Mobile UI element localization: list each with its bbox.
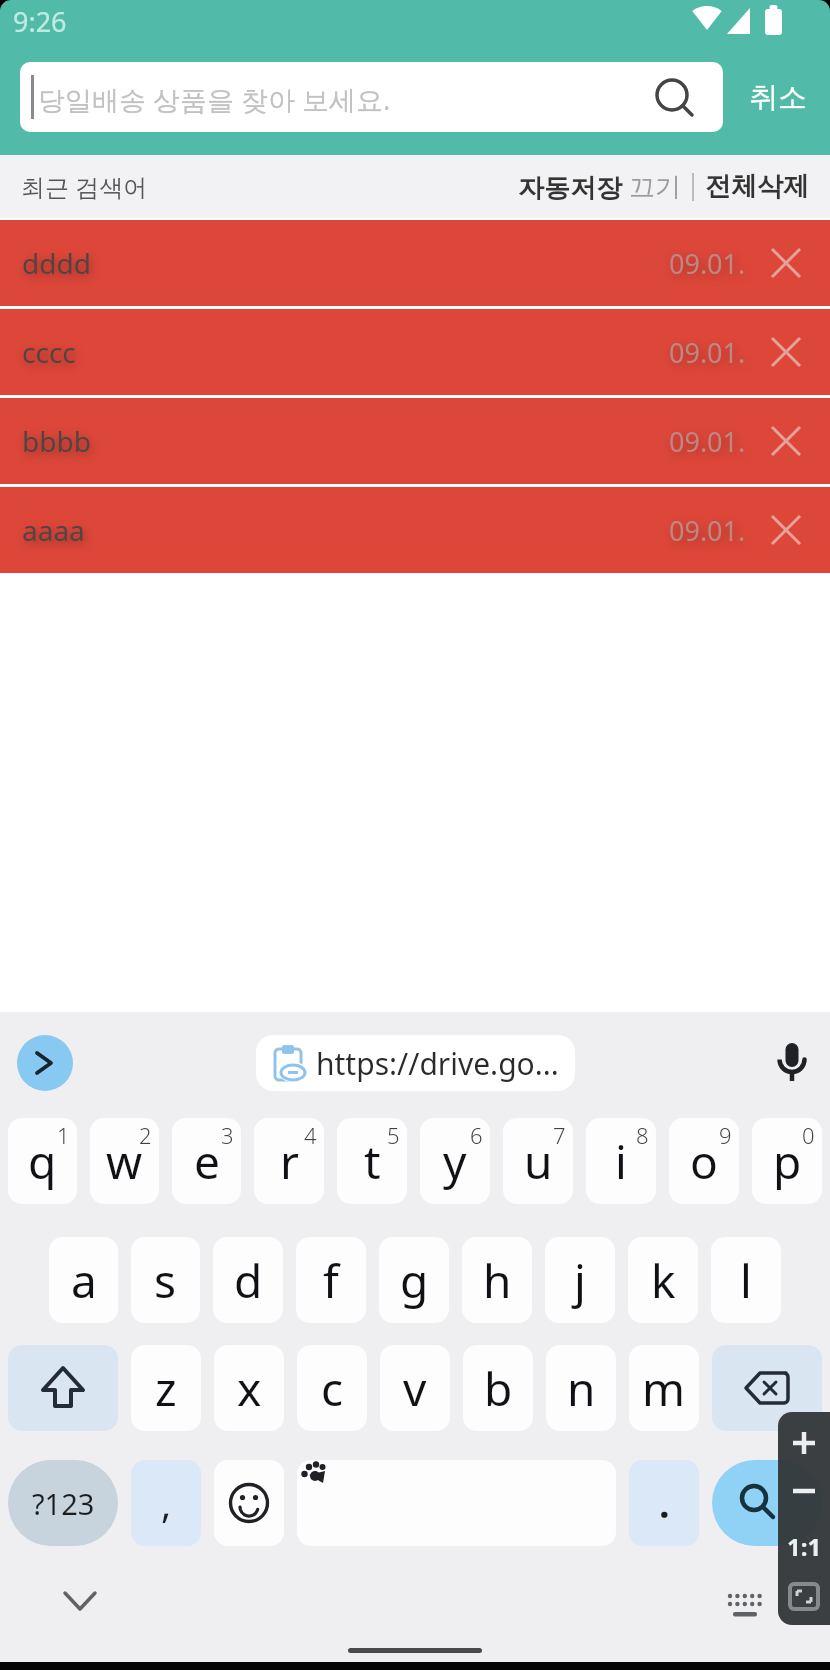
staticText: 7 <box>553 1120 566 1150</box>
button[interactable]: y <box>420 1118 490 1204</box>
button[interactable] <box>50 1576 110 1626</box>
staticText: , <box>161 1477 172 1529</box>
button[interactable]: l <box>711 1237 781 1323</box>
staticText: 09.01. <box>669 512 746 549</box>
button[interactable] <box>17 1035 73 1091</box>
staticText: 0 <box>802 1120 815 1150</box>
staticText: https://drive.go... <box>316 1043 559 1084</box>
button[interactable]: o <box>669 1118 739 1204</box>
button[interactable]: v <box>380 1345 450 1431</box>
staticText: 6 <box>470 1120 483 1150</box>
button[interactable] <box>778 1466 830 1519</box>
staticText: j <box>574 1249 586 1312</box>
button[interactable]: cccc <box>0 309 830 395</box>
button[interactable] <box>764 330 808 374</box>
staticText: d <box>234 1249 263 1312</box>
staticText: h <box>483 1249 512 1312</box>
button[interactable]: t <box>337 1118 407 1204</box>
button[interactable]: bbbb <box>0 398 830 484</box>
staticText: 09.01. <box>669 334 746 371</box>
button[interactable] <box>715 1586 775 1626</box>
button[interactable]: n <box>546 1345 616 1431</box>
button[interactable] <box>297 1460 616 1546</box>
staticText: q <box>28 1130 57 1193</box>
staticText: r <box>280 1130 299 1193</box>
button[interactable]: u <box>503 1118 573 1204</box>
staticText: 최근 검색어 <box>21 170 148 203</box>
staticText: f <box>323 1249 339 1312</box>
button[interactable]: 전체삭제 <box>705 170 809 203</box>
staticText: 1 <box>57 1120 70 1150</box>
button[interactable] <box>8 1345 118 1431</box>
staticText: 9:26 <box>13 3 67 40</box>
button[interactable]: 당일배송 상품을 찾아 보세요. <box>20 62 723 132</box>
button[interactable]: ?123 <box>8 1460 118 1546</box>
button[interactable] <box>778 1572 830 1625</box>
staticText: s <box>154 1249 177 1312</box>
staticText: u <box>524 1130 553 1193</box>
staticText: m <box>642 1357 686 1420</box>
button[interactable]: , <box>131 1460 201 1546</box>
staticText: 8 <box>636 1120 649 1150</box>
staticText: 2 <box>139 1120 152 1150</box>
button[interactable] <box>778 1412 830 1466</box>
staticText: y <box>443 1130 467 1193</box>
button[interactable] <box>764 419 808 463</box>
button[interactable] <box>768 1035 816 1091</box>
button[interactable]: q <box>8 1118 77 1204</box>
staticText: 1:1 <box>787 1530 822 1563</box>
button[interactable]: . <box>629 1460 699 1546</box>
button[interactable]: p <box>752 1118 822 1204</box>
staticText: k <box>651 1249 676 1312</box>
staticText: a <box>71 1249 97 1312</box>
staticText: b <box>484 1357 513 1420</box>
button[interactable]: 취소 <box>733 62 823 132</box>
button[interactable]: c <box>297 1345 367 1431</box>
button[interactable]: j <box>545 1237 615 1323</box>
staticText: 취소 <box>749 79 807 116</box>
button[interactable]: g <box>379 1237 449 1323</box>
button[interactable]: 자동저장 <box>518 169 681 205</box>
button[interactable]: s <box>131 1237 200 1323</box>
staticText: e <box>194 1130 220 1193</box>
button[interactable]: dddd <box>0 220 830 306</box>
button[interactable]: e <box>172 1118 241 1204</box>
button[interactable]: z <box>131 1345 201 1431</box>
button[interactable]: f <box>296 1237 366 1323</box>
staticText: 09.01. <box>669 423 746 460</box>
staticText: 9 <box>719 1120 732 1150</box>
staticText: . <box>659 1477 670 1529</box>
staticText: z <box>155 1357 177 1420</box>
button[interactable]: aaaa <box>0 487 830 573</box>
staticText: 끄기 <box>629 171 681 204</box>
button[interactable] <box>712 1345 822 1431</box>
staticText: c <box>321 1357 344 1420</box>
button[interactable]: i <box>586 1118 656 1204</box>
button[interactable]: k <box>628 1237 698 1323</box>
button[interactable] <box>778 1519 830 1572</box>
staticText: x <box>237 1357 262 1420</box>
staticText: cccc <box>22 333 76 371</box>
staticText: 4 <box>304 1120 317 1150</box>
staticText: ?123 <box>32 1484 95 1523</box>
button[interactable]: x <box>214 1345 284 1431</box>
staticText: i <box>615 1130 627 1193</box>
button[interactable]: r <box>254 1118 324 1204</box>
staticText: aaaa <box>22 511 85 549</box>
button[interactable]: d <box>213 1237 283 1323</box>
button[interactable]: h <box>462 1237 532 1323</box>
button[interactable] <box>214 1460 284 1546</box>
button[interactable]: b <box>463 1345 533 1431</box>
button[interactable]: https://drive.go... <box>256 1035 575 1091</box>
button[interactable]: m <box>629 1345 699 1431</box>
staticText: l <box>740 1249 752 1312</box>
button[interactable] <box>764 508 808 552</box>
button[interactable] <box>764 241 808 285</box>
staticText: g <box>400 1249 429 1312</box>
staticText: 자동저장 <box>518 169 629 205</box>
button[interactable]: a <box>49 1237 118 1323</box>
staticText: 5 <box>387 1120 400 1150</box>
staticText: t <box>364 1130 381 1193</box>
button[interactable]: w <box>90 1118 159 1204</box>
button[interactable] <box>712 1460 822 1546</box>
